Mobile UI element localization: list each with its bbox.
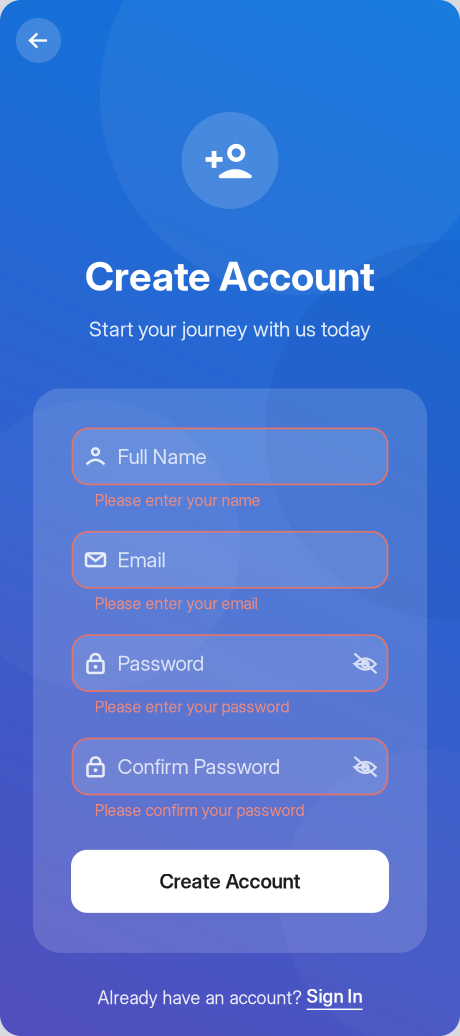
staticText: Please enter your email — [94, 594, 257, 613]
button[interactable]: Email — [72, 532, 387, 588]
staticText: Email — [117, 547, 165, 572]
staticText: Already have an account? — [97, 987, 301, 1009]
staticText: Password — [117, 651, 204, 676]
button[interactable]: Password — [72, 635, 387, 691]
staticText: Create Account — [159, 869, 300, 893]
staticText: Full Name — [117, 444, 206, 469]
button[interactable]: Already have an account? — [97, 985, 362, 1010]
staticText: Please enter your name — [94, 490, 260, 510]
button[interactable]: Back — [16, 18, 61, 63]
button[interactable]: Create Account — [71, 850, 389, 913]
staticText: Please confirm your password — [94, 800, 304, 820]
staticText: Please enter your password — [94, 697, 289, 716]
button[interactable]: Confirm Password — [72, 738, 387, 794]
staticText: Create Account — [85, 252, 375, 300]
button[interactable]: Full Name — [72, 428, 387, 484]
staticText: Start your journey with us today — [89, 316, 371, 341]
staticText: Sign In — [306, 985, 362, 1007]
staticText: Confirm Password — [117, 754, 280, 779]
